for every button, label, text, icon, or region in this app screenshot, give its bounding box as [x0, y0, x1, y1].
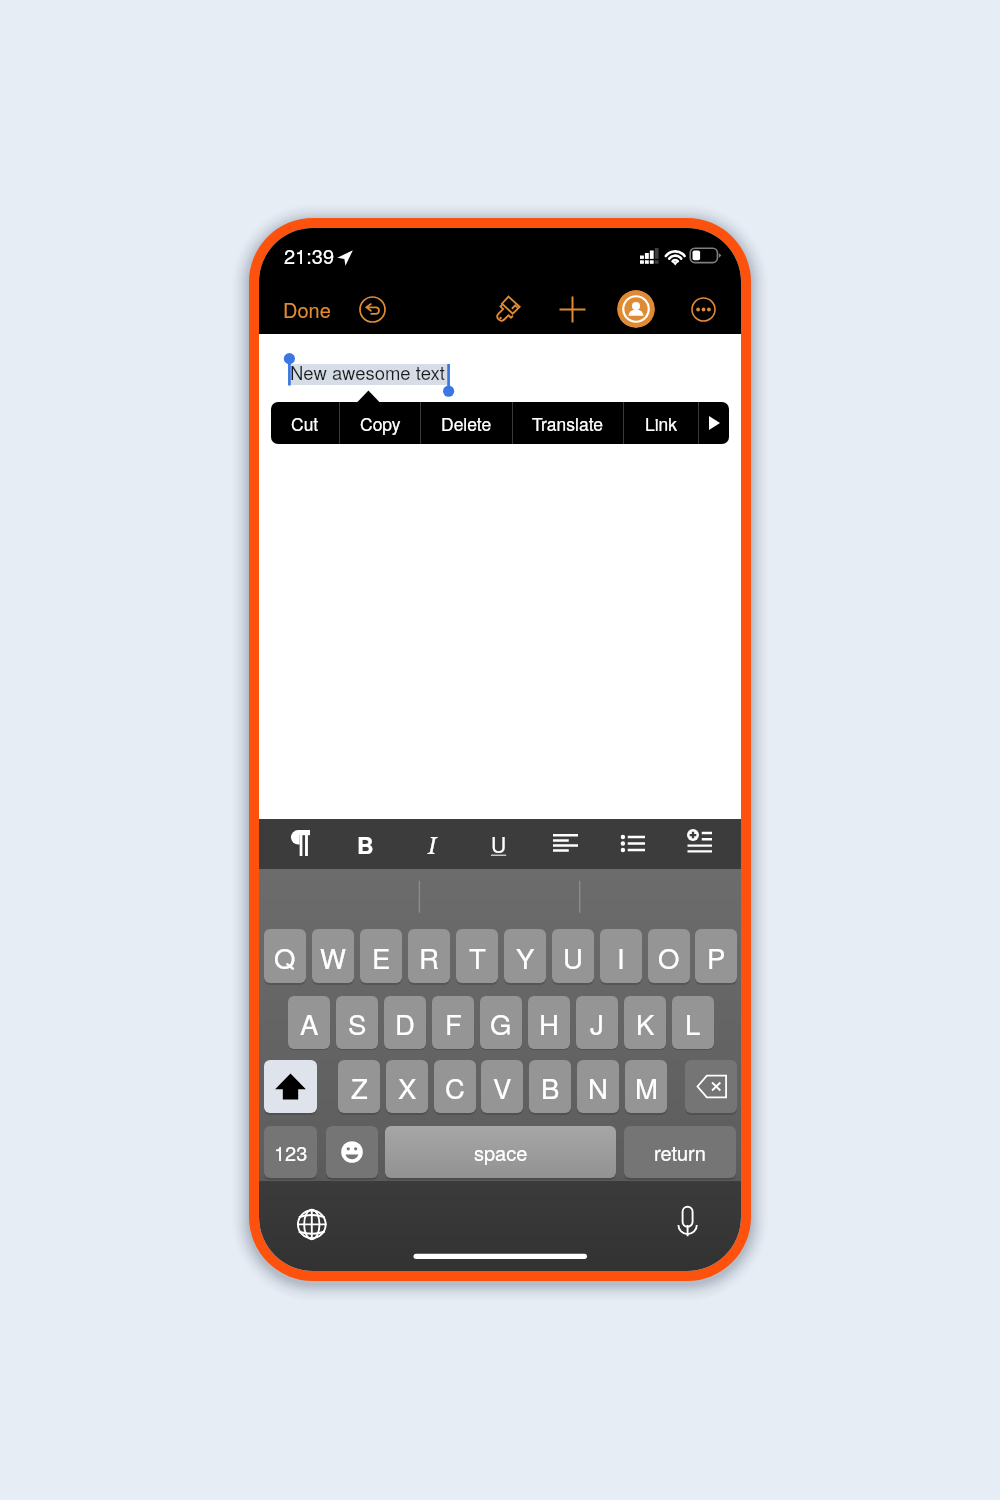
button[interactable]: O — [648, 929, 690, 983]
button[interactable]: Y — [504, 929, 546, 983]
button[interactable]: R — [408, 929, 450, 983]
staticText: Copy — [360, 411, 401, 436]
staticText: return — [654, 1138, 706, 1167]
staticText: U — [563, 937, 583, 976]
button[interactable]: Cut — [271, 402, 339, 444]
staticText: Delete — [441, 411, 492, 436]
staticText: I — [428, 829, 437, 860]
button[interactable]: Paragraph style — [280, 823, 320, 863]
staticText: K — [636, 1003, 655, 1042]
staticText: I — [617, 937, 625, 976]
button[interactable]: Indent — [679, 821, 719, 861]
button[interactable]: D — [384, 996, 426, 1049]
button[interactable]: return — [624, 1126, 736, 1178]
button[interactable]: H — [528, 996, 570, 1049]
button[interactable]: W — [312, 929, 354, 983]
staticText: W — [320, 937, 346, 976]
staticText: T — [469, 937, 486, 976]
staticText: F — [445, 1003, 462, 1042]
staticText: N — [588, 1067, 608, 1106]
button[interactable]: Bullet list — [613, 823, 653, 863]
staticText: Q — [274, 937, 296, 976]
button[interactable]: K — [624, 996, 666, 1049]
button[interactable]: U — [552, 929, 594, 983]
button[interactable]: Account — [617, 290, 655, 328]
button[interactable]: P — [695, 929, 737, 983]
button[interactable]: Copy — [340, 402, 420, 444]
staticText: E — [372, 937, 391, 976]
button[interactable]: Z — [338, 1060, 380, 1113]
button[interactable]: M — [625, 1060, 667, 1113]
staticText: D — [395, 1003, 415, 1042]
button[interactable]: Q — [264, 929, 306, 983]
button[interactable]: F — [432, 996, 474, 1049]
button[interactable]: E — [360, 929, 402, 983]
button[interactable]: A — [288, 996, 330, 1049]
staticText: U — [491, 829, 507, 859]
staticText: Translate — [532, 411, 604, 436]
staticText: 123 — [274, 1138, 308, 1167]
staticText: V — [493, 1067, 512, 1106]
button[interactable]: Delete — [421, 402, 512, 444]
button[interactable]: More options — [686, 292, 720, 326]
button[interactable]: L — [672, 996, 714, 1049]
staticText: Link — [645, 411, 678, 436]
button[interactable]: B — [529, 1060, 571, 1113]
button[interactable]: More — [699, 402, 729, 444]
staticText: H — [539, 1003, 559, 1042]
staticText: New awesome text — [290, 359, 445, 385]
button[interactable]: Italic — [412, 824, 452, 864]
staticText: P — [707, 937, 726, 976]
staticText: A — [300, 1003, 319, 1042]
button[interactable]: Align left — [545, 823, 585, 863]
button[interactable]: 123 — [264, 1126, 317, 1178]
staticText: G — [490, 1003, 512, 1042]
staticText: B — [541, 1067, 560, 1106]
staticText: Cut — [291, 411, 319, 436]
button[interactable]: Brush — [490, 291, 526, 327]
staticText: 21:39 — [284, 241, 335, 270]
button[interactable]: S — [336, 996, 378, 1049]
button[interactable]: Link — [624, 402, 698, 444]
button[interactable]: Done — [280, 292, 334, 326]
staticText: R — [419, 937, 439, 976]
staticText: Done — [283, 295, 331, 324]
button[interactable]: X — [386, 1060, 428, 1113]
button[interactable]: C — [434, 1060, 476, 1113]
button[interactable]: N — [577, 1060, 619, 1113]
staticText: space — [474, 1138, 528, 1167]
staticText: C — [445, 1067, 465, 1106]
button[interactable]: Translate — [513, 402, 623, 444]
staticText: X — [398, 1067, 417, 1106]
button[interactable]: Backspace — [685, 1060, 737, 1113]
button[interactable]: V — [481, 1060, 523, 1113]
staticText: O — [658, 937, 680, 976]
staticText: J — [590, 1003, 604, 1042]
staticText: L — [685, 1003, 701, 1042]
button[interactable]: Emoji — [326, 1126, 378, 1178]
button[interactable]: J — [576, 996, 618, 1049]
button[interactable]: Shift — [264, 1060, 317, 1113]
button[interactable]: G — [480, 996, 522, 1049]
staticText: Z — [351, 1067, 368, 1106]
staticText: Y — [516, 937, 535, 976]
staticText: S — [348, 1003, 367, 1042]
staticText: B — [357, 828, 374, 861]
button[interactable]: Add — [555, 292, 589, 326]
button[interactable]: Underline — [479, 824, 519, 864]
button[interactable]: T — [456, 929, 498, 983]
button[interactable]: space — [385, 1126, 616, 1178]
staticText: M — [635, 1067, 658, 1106]
button[interactable]: Undo — [355, 292, 389, 326]
button[interactable]: Bold — [345, 824, 385, 864]
button[interactable]: I — [600, 929, 642, 983]
